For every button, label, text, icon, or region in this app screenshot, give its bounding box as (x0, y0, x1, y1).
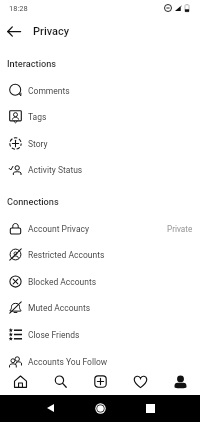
button[interactable]: Search (40, 368, 80, 394)
staticText: Account Privacy (28, 224, 90, 234)
staticText: Connections (7, 196, 59, 207)
staticText: Blocked Accounts (28, 277, 97, 287)
staticText: Interactions (7, 58, 57, 69)
button[interactable]: Accounts You Follow (0, 348, 200, 375)
button[interactable]: Profile (160, 368, 200, 394)
button[interactable]: Activity (120, 368, 160, 394)
button[interactable]: Restricted Accounts (0, 241, 200, 268)
button[interactable]: Back (2, 19, 26, 43)
button[interactable]: Home (91, 399, 109, 417)
staticText: Private (167, 224, 193, 234)
staticText: 18:28 (9, 4, 28, 13)
staticText: Story (28, 139, 48, 149)
button[interactable]: Back (41, 399, 59, 417)
button[interactable]: Recent apps (141, 399, 159, 417)
button[interactable]: Tags (0, 103, 200, 130)
button[interactable]: Muted Accounts (0, 294, 200, 321)
button[interactable]: Create (80, 368, 120, 394)
button[interactable]: Close Friends (0, 321, 200, 348)
button[interactable]: Activity Status (0, 156, 200, 183)
button[interactable]: Comments (0, 77, 200, 104)
staticText: Activity Status (28, 165, 83, 175)
staticText: Privacy (33, 25, 70, 38)
staticText: Restricted Accounts (28, 250, 105, 260)
staticText: Comments (28, 86, 70, 96)
staticText: Muted Accounts (28, 303, 91, 313)
staticText: Tags (28, 112, 47, 122)
staticText: Accounts You Follow (28, 357, 108, 367)
button[interactable]: Home (0, 368, 40, 394)
button[interactable]: Story (0, 130, 200, 157)
button[interactable]: Blocked Accounts (0, 268, 200, 295)
staticText: Close Friends (28, 330, 80, 340)
button[interactable]: Account Privacy (0, 215, 200, 242)
